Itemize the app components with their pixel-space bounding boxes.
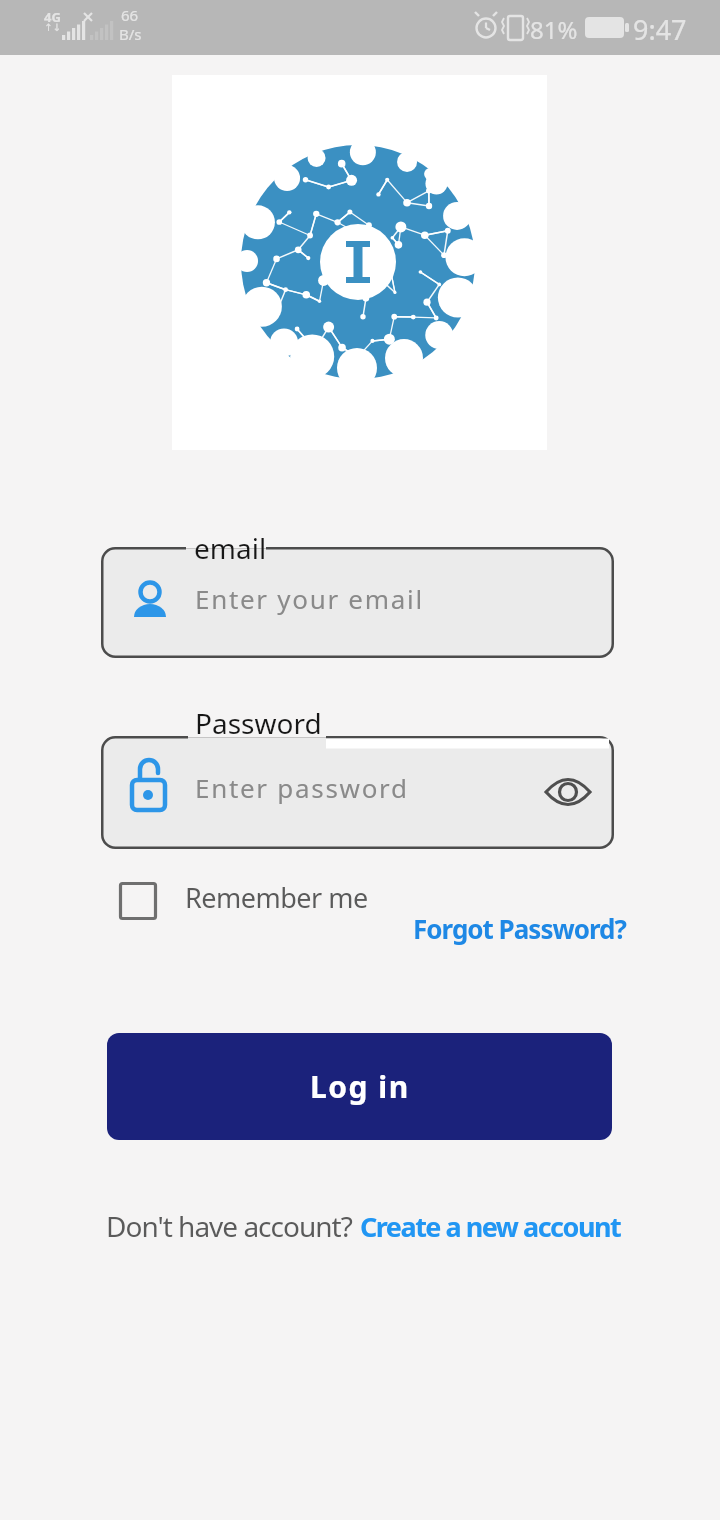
staticText: email — [194, 529, 267, 567]
staticText: Remember me — [185, 879, 368, 916]
staticText: Don't have account? — [106, 1207, 352, 1245]
staticText: 81% — [530, 13, 578, 46]
button[interactable]: Enter your email — [101, 547, 614, 658]
button[interactable]: Log in — [107, 1033, 612, 1140]
staticText: Enter your email — [195, 581, 424, 616]
staticText: ↑↓ — [44, 22, 61, 34]
staticText: 9:47 — [633, 11, 687, 48]
button[interactable]: Enter password — [101, 736, 614, 849]
staticText: B/s — [119, 24, 142, 44]
staticText: 4G — [44, 8, 61, 26]
button[interactable]: Create a new account — [360, 1208, 621, 1245]
button[interactable] — [531, 760, 605, 824]
button[interactable]: Forgot Password? — [413, 911, 626, 946]
staticText: 66 — [121, 5, 139, 25]
staticText: Forgot Password? — [413, 911, 626, 946]
staticText: Log in — [310, 1066, 410, 1107]
staticText: Create a new account — [360, 1208, 621, 1245]
button[interactable]: Remember me — [115, 872, 385, 924]
staticText: Enter password — [195, 770, 409, 805]
staticText: Password — [195, 704, 322, 742]
